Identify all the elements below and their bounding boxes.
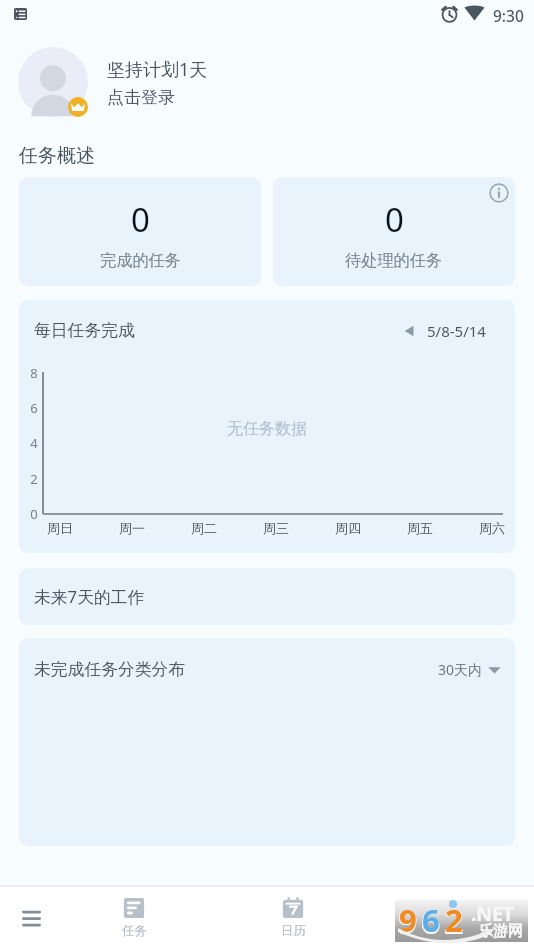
staticText: 完成的任务 xyxy=(100,250,181,270)
staticText: 周四 xyxy=(335,520,361,536)
staticText: 任务 xyxy=(122,923,147,939)
staticText: 乐游网 xyxy=(478,922,523,941)
staticText: 30天内 xyxy=(438,660,483,679)
button[interactable]: 30天内 xyxy=(438,660,502,679)
button[interactable]: Info xyxy=(489,183,509,203)
staticText: .NET xyxy=(471,900,514,927)
staticText: 周一 xyxy=(119,520,145,536)
staticText: 6 xyxy=(422,899,440,941)
staticText: 2 xyxy=(444,898,464,940)
staticText: 0 xyxy=(385,197,404,242)
staticText: 无任务数据 xyxy=(227,419,307,439)
staticText: 9 xyxy=(399,899,417,941)
button[interactable]: Menu xyxy=(0,886,63,949)
staticText: 未完成任务分类分布 xyxy=(34,659,186,680)
staticText: 4 xyxy=(30,434,38,452)
staticText: 未来7天的工作 xyxy=(34,585,145,608)
staticText: 6 xyxy=(421,898,441,940)
staticText: 0 xyxy=(30,505,38,523)
button[interactable]: 0 xyxy=(273,177,515,286)
staticText: 9:30 xyxy=(493,5,524,26)
button[interactable]: Profile xyxy=(18,47,88,117)
staticText: 5/8-5/14 xyxy=(427,321,486,341)
staticText: 每日任务完成 xyxy=(34,320,135,341)
button[interactable]: 日历 xyxy=(253,886,333,949)
staticText: 0 xyxy=(131,197,150,242)
staticText: 周日 xyxy=(47,520,73,536)
staticText: 任务概述 xyxy=(19,144,95,168)
staticText: 待处理的任务 xyxy=(345,250,443,270)
staticText: 6 xyxy=(30,399,38,417)
staticText: 2 xyxy=(30,470,38,488)
staticText: 周二 xyxy=(191,520,217,536)
button[interactable]: 任务 xyxy=(94,886,174,949)
staticText: 点击登录 xyxy=(107,87,175,108)
staticText: 周五 xyxy=(407,520,433,536)
staticText: 坚持计划1天 xyxy=(107,57,208,82)
staticText: 8 xyxy=(30,364,38,382)
staticText: 日历 xyxy=(281,923,306,939)
staticText: 2 xyxy=(445,899,463,941)
staticText: 周六 xyxy=(479,520,505,536)
staticText: 周三 xyxy=(263,520,289,536)
staticText: 9 xyxy=(398,898,418,940)
button[interactable]: Previous week xyxy=(403,324,417,338)
button[interactable]: 0 xyxy=(19,177,261,286)
button[interactable]: 未来7天的工作 xyxy=(19,568,515,625)
